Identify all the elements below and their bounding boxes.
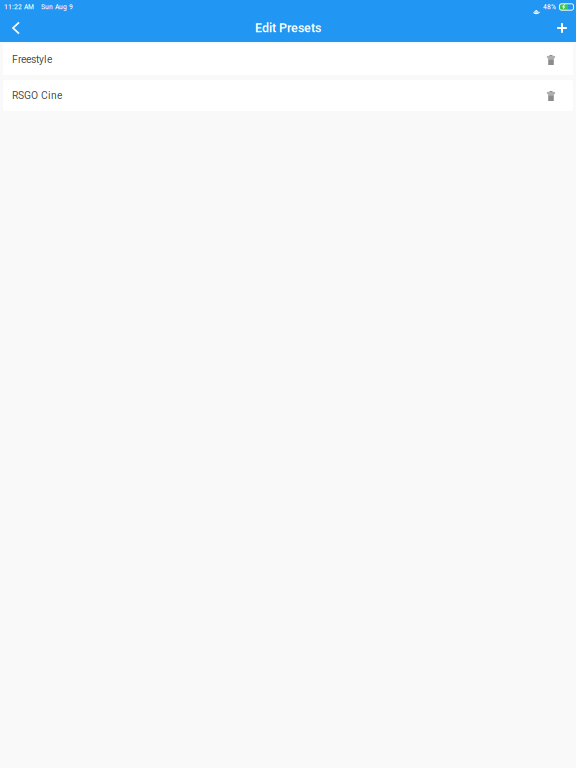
staticText: RSGO Cine	[12, 89, 62, 102]
staticText: Freestyle	[12, 53, 52, 66]
staticText: Edit Presets	[255, 21, 321, 35]
staticText: Sun Aug 9	[41, 3, 73, 11]
button[interactable]: RSGO Cine	[3, 80, 573, 111]
button[interactable]: Delete Freestyle	[538, 44, 564, 75]
button[interactable]: Freestyle	[3, 44, 573, 75]
button[interactable]: Back	[0, 14, 32, 42]
button[interactable]: Add preset	[548, 14, 576, 42]
staticText: 11:22 AM	[4, 3, 34, 11]
button[interactable]: Delete RSGO Cine	[538, 80, 564, 111]
staticText: 48%	[543, 3, 556, 11]
